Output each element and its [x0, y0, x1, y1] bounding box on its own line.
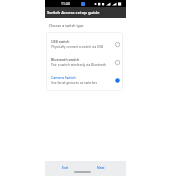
button[interactable]: Exit — [61, 164, 69, 171]
staticText: Physically connect a switch via USB — [51, 45, 104, 49]
staticText: Switch Access setup guide — [47, 10, 100, 16]
staticText: Use facial gestures as switches — [51, 81, 97, 85]
staticText: Choose a switch type — [49, 23, 84, 28]
button[interactable]: USB switch — [46, 35, 123, 53]
staticText: USB switch — [51, 39, 70, 44]
staticText: Next — [97, 165, 105, 170]
staticText: 11:34 — [61, 1, 70, 6]
button[interactable]: Next — [96, 164, 106, 171]
button[interactable]: Bluetooth switch — [46, 53, 123, 71]
button[interactable]: Camera Switch — [46, 71, 123, 89]
staticText: Pair a switch wirelessly via Bluetooth — [51, 63, 106, 67]
staticText: Bluetooth switch — [51, 57, 80, 62]
staticText: Camera Switch — [51, 75, 76, 80]
staticText: Exit — [62, 165, 68, 170]
